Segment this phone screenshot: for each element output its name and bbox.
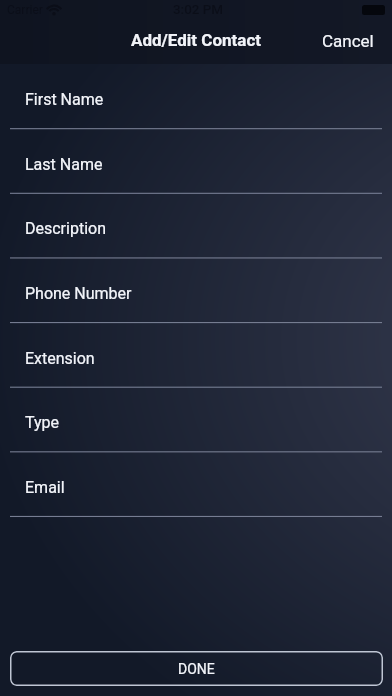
button[interactable]: Description (0, 193, 392, 258)
button[interactable]: DONE (10, 651, 383, 686)
button[interactable]: Extension (0, 323, 392, 388)
button[interactable]: First Name (0, 64, 392, 129)
staticText: Add/Edit Contact (131, 30, 262, 50)
button[interactable]: Email (0, 452, 392, 517)
staticText: DONE (178, 661, 215, 677)
button[interactable]: Phone Number (0, 258, 392, 323)
staticText: First Name (25, 90, 104, 109)
staticText: 3:02 PM (173, 2, 223, 18)
button[interactable]: Last Name (0, 129, 392, 194)
staticText: Last Name (25, 155, 103, 174)
button[interactable]: Type (0, 387, 392, 452)
other: Wi-Fi signal (47, 5, 61, 15)
staticText: Extension (25, 349, 95, 368)
staticText: Type (25, 413, 60, 432)
staticText: Phone Number (25, 284, 132, 303)
button[interactable]: Cancel (304, 20, 392, 64)
staticText: Email (25, 478, 65, 497)
staticText: Cancel (322, 31, 374, 51)
staticText: Description (25, 219, 106, 238)
